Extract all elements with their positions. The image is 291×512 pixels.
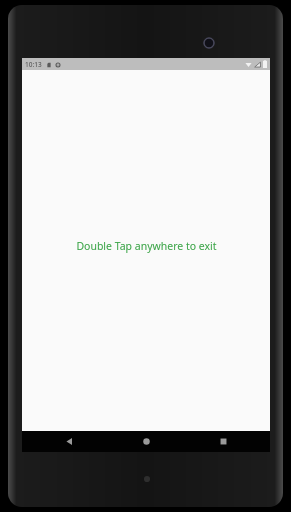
staticText: Double Tap anywhere to exit xyxy=(76,239,217,253)
button[interactable]: Double Tap anywhere to exit xyxy=(22,70,270,431)
button[interactable]: Back xyxy=(39,431,99,452)
button[interactable]: Recent apps xyxy=(193,431,253,452)
button[interactable]: Home xyxy=(116,431,176,452)
staticText: 10:13 xyxy=(25,60,42,69)
